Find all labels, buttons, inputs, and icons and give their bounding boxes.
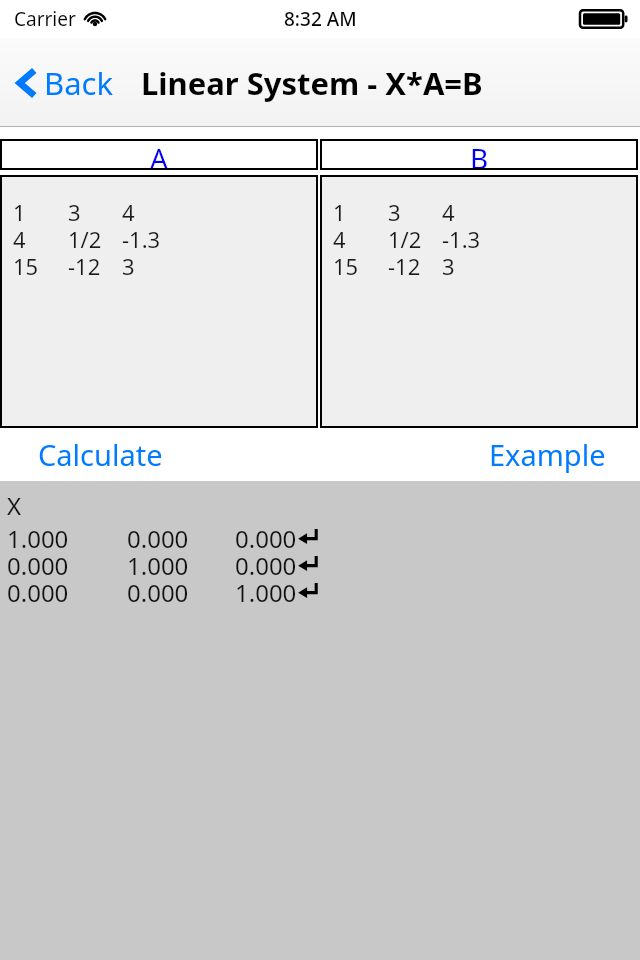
button[interactable]: Example <box>471 429 640 480</box>
staticText: 0.000 <box>127 522 189 549</box>
staticText: 3 <box>122 251 135 278</box>
staticText: 8:32 AM <box>284 6 357 32</box>
staticText: 4 <box>13 224 26 251</box>
staticText: 1.000 <box>7 522 69 549</box>
button[interactable]: Calculate <box>0 429 181 480</box>
staticText: 1.000 <box>127 549 189 576</box>
staticText: Linear System - X*A=B <box>141 62 483 104</box>
staticText: 4 <box>122 197 135 224</box>
staticText: -1.3 <box>442 224 481 251</box>
staticText: 0.000 <box>7 549 69 576</box>
button[interactable]: 1 <box>0 175 318 428</box>
staticText: Calculate <box>38 435 163 474</box>
staticText: B <box>470 139 489 170</box>
staticText: 15 <box>333 251 359 278</box>
staticText: -12 <box>388 251 421 278</box>
staticText: 3 <box>442 251 455 278</box>
staticText: 15 <box>13 251 39 278</box>
staticText: Example <box>489 435 606 474</box>
button[interactable]: Back <box>0 56 121 110</box>
staticText: 0.000 <box>235 522 297 549</box>
staticText: -12 <box>68 251 101 278</box>
staticText: 0.000 <box>127 576 189 603</box>
staticText: 1 <box>13 197 26 224</box>
staticText: 0.000 <box>235 549 297 576</box>
staticText: 1/2 <box>388 224 422 251</box>
button[interactable]: 1 <box>320 175 638 428</box>
staticText: Back <box>44 62 113 104</box>
staticText: 4 <box>333 224 346 251</box>
staticText: 1 <box>333 197 346 224</box>
staticText: 0.000 <box>7 576 69 603</box>
staticText: -1.3 <box>122 224 161 251</box>
staticText: X <box>7 489 22 522</box>
button[interactable]: B <box>320 139 638 170</box>
staticText: 3 <box>68 197 81 224</box>
staticText: 4 <box>442 197 455 224</box>
staticText: 1.000 <box>235 576 297 603</box>
button[interactable]: A <box>0 139 318 170</box>
staticText: Carrier <box>14 6 76 32</box>
staticText: A <box>150 139 168 170</box>
staticText: 1/2 <box>68 224 102 251</box>
staticText: 3 <box>388 197 401 224</box>
